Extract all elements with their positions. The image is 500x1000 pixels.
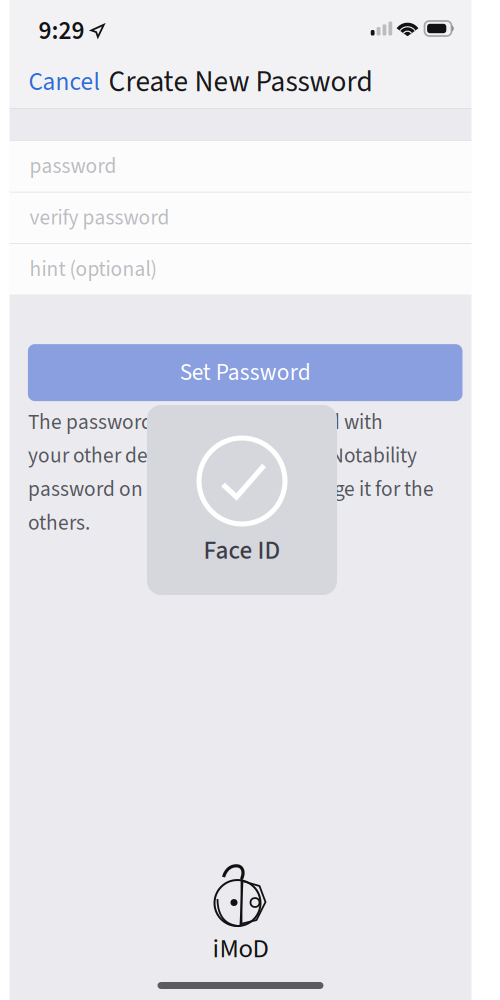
staticText: iMoD xyxy=(212,930,268,968)
staticText: The password you set is not synced with xyxy=(28,407,383,437)
staticText: your other devices. If you set your Nota… xyxy=(28,441,417,471)
staticText: hint (optional) xyxy=(29,254,156,285)
staticText: Create New Password xyxy=(108,61,372,103)
button[interactable]: password xyxy=(9,141,471,192)
button[interactable]: hint (optional) xyxy=(9,244,471,295)
staticText: Cancel xyxy=(28,64,99,100)
staticText: password xyxy=(29,151,116,182)
button[interactable]: verify password xyxy=(9,193,471,243)
staticText: Set Password xyxy=(180,356,311,389)
staticText: password on another device, change it fo… xyxy=(28,474,434,505)
staticText: verify password xyxy=(29,203,169,233)
staticText: others. xyxy=(28,508,90,538)
staticText: Face ID xyxy=(203,533,280,569)
staticText: 9:29 xyxy=(38,13,84,49)
button[interactable]: Cancel xyxy=(25,59,102,105)
button[interactable]: Set Password xyxy=(28,344,462,401)
